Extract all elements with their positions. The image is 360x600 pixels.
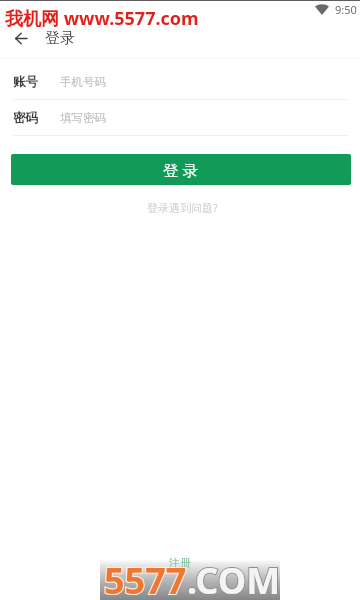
button[interactable]: 注册	[164, 554, 196, 572]
button[interactable]: 登录遇到问题?	[141, 198, 224, 217]
staticText: 注册	[169, 556, 191, 570]
staticText: 登 录	[163, 159, 199, 180]
staticText: 填写密码	[60, 111, 106, 125]
staticText: 9:50	[335, 2, 357, 17]
staticText: 登录	[45, 29, 75, 48]
staticText: 账号	[13, 74, 38, 90]
button[interactable]: 登 录	[11, 154, 351, 185]
staticText: 密码	[13, 110, 38, 126]
staticText: 登录遇到问题?	[147, 200, 218, 215]
button[interactable]: 密码	[0, 100, 360, 135]
button[interactable]: 账号	[0, 64, 360, 99]
button[interactable]: Back	[8, 20, 34, 56]
staticText: 手机号码	[60, 75, 106, 89]
